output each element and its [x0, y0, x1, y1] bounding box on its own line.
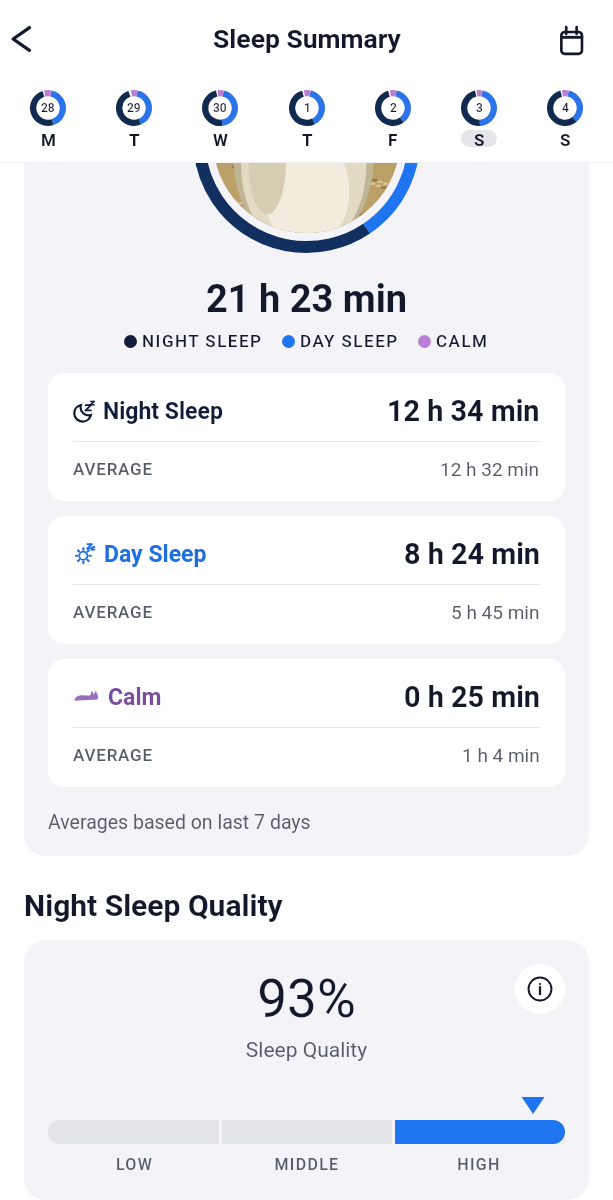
staticText: Averages based on last 7 days	[48, 811, 311, 834]
staticText: Sleep Quality	[24, 1038, 589, 1063]
staticText: F	[388, 130, 398, 147]
staticText: 2	[390, 101, 397, 115]
staticText: W	[213, 130, 228, 147]
button[interactable]: 30	[182, 78, 258, 147]
staticText: 0 h 25 min	[404, 680, 540, 714]
staticText: AVERAGE	[73, 602, 153, 622]
button[interactable]: Calendar	[545, 13, 597, 65]
staticText: 5 h 45 min	[451, 601, 540, 623]
button[interactable]: Info	[515, 964, 565, 1014]
button[interactable]: 3	[441, 78, 517, 147]
staticText: 28	[41, 101, 55, 115]
staticText: NIGHT SLEEP	[142, 331, 263, 351]
button[interactable]: 4	[527, 78, 603, 147]
staticText: DAY SLEEP	[300, 331, 399, 351]
staticText: 12 h 32 min	[440, 458, 540, 480]
button[interactable]: Night Sleep	[48, 373, 565, 501]
button[interactable]: Day Sleep	[48, 516, 565, 644]
staticText: AVERAGE	[73, 745, 153, 765]
staticText: LOW	[48, 1155, 221, 1174]
staticText: 3	[476, 101, 483, 115]
staticText: 29	[127, 101, 141, 115]
staticText: Sleep Summary	[213, 23, 401, 54]
staticText: 4	[562, 101, 569, 115]
staticText: Night Sleep Quality	[24, 888, 283, 923]
button[interactable]: 29	[96, 78, 172, 147]
staticText: HIGH	[393, 1155, 565, 1174]
staticText: 1	[304, 101, 311, 115]
button[interactable]: 1	[269, 78, 345, 147]
staticText: 21 h 23 min	[24, 277, 589, 322]
staticText: 8 h 24 min	[404, 537, 540, 571]
staticText: Calm	[108, 684, 162, 711]
staticText: 12 h 34 min	[387, 394, 540, 428]
button[interactable]: 28	[10, 78, 86, 147]
staticText: T	[302, 130, 313, 147]
staticText: S	[560, 130, 571, 147]
staticText: AVERAGE	[73, 459, 153, 479]
staticText: Day Sleep	[104, 541, 207, 568]
staticText: 1 h 4 min	[462, 744, 540, 766]
button[interactable]: Back	[0, 13, 52, 65]
staticText: Night Sleep	[103, 398, 223, 425]
staticText: 93%	[24, 968, 589, 1030]
staticText: T	[129, 130, 140, 147]
staticText: CALM	[436, 331, 489, 351]
staticText: 30	[213, 101, 227, 115]
staticText: M	[41, 130, 56, 147]
staticText: S	[474, 130, 485, 147]
button[interactable]: 2	[355, 78, 431, 147]
button[interactable]: Calm	[48, 659, 565, 787]
staticText: MIDDLE	[221, 1155, 393, 1174]
